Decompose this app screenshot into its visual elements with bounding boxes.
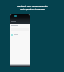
- staticText: with built-in tracking: [20, 7, 45, 10]
- button[interactable]: [10, 14, 30, 67]
- staticText: Restrict any replacements: [17, 4, 48, 7]
